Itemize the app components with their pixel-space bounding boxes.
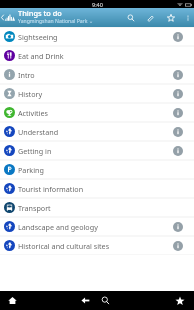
staticText: Parking <box>18 165 44 175</box>
button[interactable]: Activities <box>0 103 194 122</box>
button[interactable]: Home <box>2 291 23 310</box>
staticText: 9:40 <box>92 1 103 8</box>
staticText: Intro <box>18 70 35 80</box>
button[interactable]: Intro <box>0 65 194 84</box>
staticText: History <box>18 89 43 99</box>
staticText: Tourist information <box>18 184 84 194</box>
button[interactable]: Understand <box>0 122 194 141</box>
button[interactable]: Search <box>121 8 141 27</box>
button[interactable]: Navigate up <box>0 8 15 27</box>
button[interactable]: Getting in <box>0 141 194 160</box>
staticText: Landscape and geology <box>18 222 98 232</box>
button[interactable]: Sightseeing <box>0 27 194 46</box>
staticText: Eat and Drink <box>18 51 64 61</box>
staticText: Sightseeing <box>18 32 58 42</box>
button[interactable]: Bookmark <box>161 8 181 27</box>
staticText: Yangmingshan National Park <box>18 18 88 25</box>
button[interactable]: Tourist information <box>0 179 194 198</box>
button[interactable]: More options <box>181 8 194 27</box>
button[interactable]: Historical and cultural sites <box>0 236 194 255</box>
staticText: Activities <box>18 108 48 118</box>
button[interactable]: Edit <box>141 8 161 27</box>
staticText: Things to do <box>18 8 62 18</box>
button[interactable]: Eat and Drink <box>0 46 194 65</box>
button[interactable]: History <box>0 84 194 103</box>
button[interactable]: Back <box>76 291 95 310</box>
staticText: Understand <box>18 127 59 137</box>
button[interactable]: Search <box>95 291 116 310</box>
button[interactable]: Parking <box>0 160 194 179</box>
button[interactable]: Transport <box>0 198 194 217</box>
staticText: Getting in <box>18 146 52 156</box>
staticText: Transport <box>18 203 51 213</box>
button[interactable]: Landscape and geology <box>0 217 194 236</box>
button[interactable]: Favorites <box>169 291 190 310</box>
staticText: Historical and cultural sites <box>18 241 110 251</box>
